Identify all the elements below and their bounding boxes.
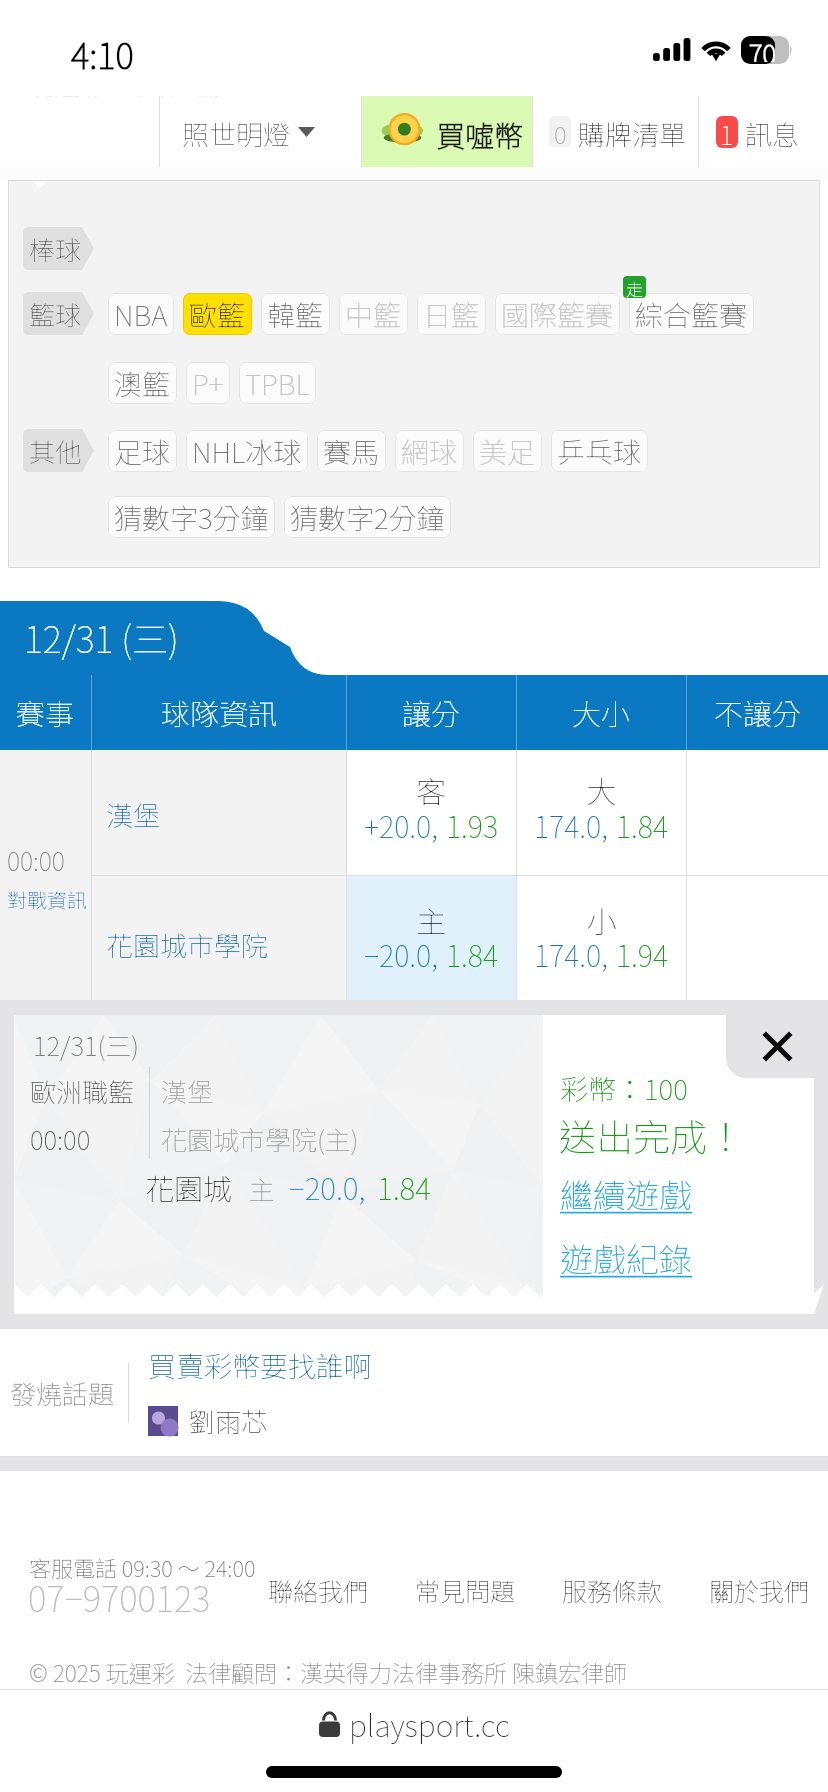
staticText: 大 [517, 768, 686, 811]
button[interactable]: 主 [347, 876, 516, 1000]
staticText: 歐籃 [189, 294, 246, 335]
button[interactable]: 籃球 [23, 292, 94, 335]
staticText: 07−9700123 [28, 1571, 211, 1622]
button[interactable]: 日籃 [417, 293, 486, 335]
button[interactable]: 客 [347, 750, 516, 875]
button[interactable]: 漢堡 [106, 795, 160, 834]
button[interactable]: 球隊資訊 [92, 675, 346, 750]
button[interactable]: 美足 [473, 430, 542, 472]
button[interactable]: 不讓分 [687, 675, 828, 750]
button[interactable]: NBA [108, 293, 174, 335]
staticText: 球隊資訊 [161, 691, 278, 733]
staticText: NBA [114, 294, 168, 335]
button[interactable]: 1 [699, 96, 828, 167]
button[interactable]: 國際籃賽 [495, 293, 620, 335]
staticText: 1.84 [616, 804, 669, 846]
staticText: 送出完成！ [559, 1108, 744, 1162]
staticText: 客 [347, 768, 516, 811]
button[interactable]: 讓分 [347, 675, 516, 750]
button[interactable]: 澳籃 [108, 362, 177, 404]
staticText: 12/31(三) [33, 1026, 140, 1064]
button[interactable]: 繼續遊戲 [560, 1170, 692, 1218]
button[interactable]: 其他 [23, 429, 94, 472]
staticText: 客服電話 09:30 ～ 24:00 [29, 1551, 256, 1583]
staticText: 購牌清單 [578, 114, 686, 153]
button[interactable]: Close [726, 1015, 828, 1078]
button[interactable]: 聯絡我們 [268, 1572, 369, 1608]
staticText: 小 [517, 898, 686, 941]
staticText: 大小 [572, 691, 631, 733]
staticText: 花園城市學院(主) [161, 1120, 359, 1158]
staticText: −20.0, [289, 1165, 366, 1208]
staticText: 棒球 [29, 230, 82, 268]
staticText: 劉雨芯 [189, 1402, 268, 1440]
staticText: 乒乓球 [557, 431, 642, 472]
button[interactable]: TPBL [239, 362, 316, 404]
staticText: 網球 [401, 431, 458, 472]
staticText: 國際籃賽 [501, 294, 614, 335]
staticText: 花園城 [145, 1166, 233, 1208]
button[interactable]: 對戰資訊 [7, 885, 87, 914]
staticText: 照世明燈 [182, 114, 290, 153]
staticText: 韓籃 [267, 294, 324, 335]
staticText: 美足 [479, 431, 536, 472]
button[interactable]: 棒球 [23, 227, 94, 270]
staticText: 174.0, [534, 804, 608, 846]
button[interactable]: 賽馬 [317, 430, 386, 472]
staticText: 1.84 [446, 933, 499, 975]
button[interactable]: 遊戲紀錄 [560, 1234, 692, 1282]
staticText: 70 [749, 34, 777, 62]
staticText: 主 [249, 1170, 276, 1208]
button[interactable]: 網球 [395, 430, 464, 472]
staticText: 中籃 [345, 294, 402, 335]
staticText: 籃球 [29, 295, 82, 333]
button[interactable]: 足球 [108, 430, 177, 472]
button[interactable]: 買賣彩幣要找誰啊 [148, 1345, 373, 1386]
button[interactable]: 照世明燈 [160, 96, 361, 167]
staticText: 買噓幣 [436, 113, 524, 155]
staticText: TPBL [245, 363, 310, 404]
button[interactable]: 中籃 [339, 293, 408, 335]
staticText: 12/31 (三) [24, 611, 179, 663]
button[interactable]: 猜數字2分鐘 [284, 496, 451, 538]
button[interactable]: 賽事 [0, 675, 91, 750]
staticText: 足球 [114, 431, 171, 472]
button[interactable]: NHL冰球 [186, 430, 308, 472]
button[interactable]: P+ [186, 362, 230, 404]
button[interactable]: 小 [517, 876, 686, 1000]
staticText: 綜合籃賽 [635, 294, 748, 335]
button[interactable]: 0 [533, 96, 698, 167]
button[interactable]: 大小 [517, 675, 686, 750]
button[interactable]: 常見問題 [415, 1572, 516, 1608]
button[interactable]: 大 [517, 750, 686, 875]
button[interactable]: 綜合籃賽 [629, 293, 754, 335]
button[interactable]: 花園城市學院 [106, 925, 268, 964]
staticText: 訊息 [745, 114, 799, 153]
staticText: NHL冰球 [192, 431, 302, 472]
staticText: playsport.cc [349, 1702, 510, 1745]
button[interactable]: 歐籃 [183, 293, 252, 335]
staticText: 00:00 [30, 1120, 91, 1158]
staticText: 00:00 [7, 842, 65, 878]
staticText: 歐洲職籃 [30, 1072, 135, 1110]
button[interactable]: 關於我們 [709, 1572, 810, 1608]
staticText: © 2025 玩運彩 法律顧問：漢英得力法律事務所 陳鎮宏律師 [29, 1655, 627, 1688]
staticText: 主 [347, 898, 516, 941]
staticText: P+ [192, 363, 224, 404]
staticText: 走 [626, 276, 643, 298]
staticText: 日籃 [423, 294, 480, 335]
staticText: 玩運彩 登入 註冊 [28, 96, 222, 103]
button[interactable]: 買噓幣 [362, 96, 532, 167]
staticText: 不讓分 [714, 691, 802, 733]
staticText: 猜數字3分鐘 [114, 497, 269, 538]
staticText: 174.0, [534, 933, 608, 975]
button[interactable]: 韓籃 [261, 293, 330, 335]
staticText: 1.94 [616, 933, 669, 975]
staticText: 1 [720, 116, 734, 148]
staticText: 其他 [29, 432, 82, 470]
button[interactable]: 猜數字3分鐘 [108, 496, 275, 538]
button[interactable]: 服務條款 [562, 1572, 663, 1608]
staticText: 猜數字2分鐘 [290, 497, 445, 538]
button[interactable]: 乒乓球 [551, 430, 648, 472]
staticText: 賽馬 [323, 431, 380, 472]
